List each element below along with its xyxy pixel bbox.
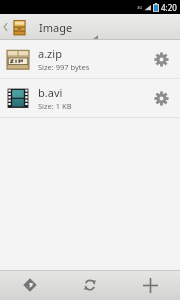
button[interactable]: a.zip xyxy=(0,40,180,78)
staticText: a.zip xyxy=(38,46,62,61)
staticText: Size: 1 KB xyxy=(38,101,72,111)
button[interactable]: More options xyxy=(86,14,104,40)
staticText: 4:20 xyxy=(161,2,177,13)
staticText: Size: 997 bytes xyxy=(38,62,90,72)
staticText: 3G xyxy=(137,5,143,10)
staticText: Image xyxy=(39,20,73,35)
button[interactable]: Settings for b.avi xyxy=(146,83,176,113)
staticText: b.avi xyxy=(38,85,63,100)
button[interactable]: b.avi xyxy=(0,79,180,117)
button[interactable]: Navigate up xyxy=(0,14,30,40)
button[interactable]: Add xyxy=(120,270,180,300)
button[interactable]: Navigate xyxy=(0,270,60,300)
button[interactable]: Refresh xyxy=(60,270,120,300)
button[interactable]: Settings for a.zip xyxy=(146,44,176,74)
